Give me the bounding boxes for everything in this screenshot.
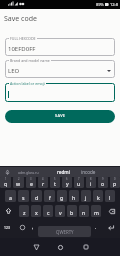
button[interactable]: q bbox=[0, 176, 11, 188]
staticText: o bbox=[101, 180, 105, 187]
staticText: u bbox=[77, 180, 81, 187]
button[interactable]: Back bbox=[26, 238, 46, 256]
staticText: x bbox=[35, 209, 38, 216]
button[interactable]: g bbox=[57, 190, 67, 202]
staticText: a bbox=[9, 194, 12, 201]
staticText: Brand and model name bbox=[10, 58, 50, 63]
staticText: 7 bbox=[78, 177, 80, 181]
button[interactable]: d bbox=[31, 190, 42, 202]
button[interactable]: w bbox=[13, 176, 24, 188]
staticText: adm.glass.ru bbox=[18, 170, 39, 175]
button[interactable] bbox=[5, 60, 115, 78]
button[interactable]: r bbox=[38, 176, 48, 188]
staticText: Action label or emoji bbox=[10, 81, 45, 86]
staticText: 4 bbox=[42, 177, 44, 181]
staticText: p bbox=[113, 180, 117, 187]
staticText: 9 bbox=[102, 177, 104, 181]
staticText: SAVE bbox=[55, 113, 66, 118]
button[interactable]: adm.glass.ru bbox=[12, 167, 44, 177]
staticText: 8 bbox=[90, 177, 92, 181]
staticText: 5 bbox=[54, 177, 56, 181]
staticText: v bbox=[59, 209, 62, 216]
button[interactable]: redmi bbox=[47, 167, 79, 177]
button[interactable]: t bbox=[50, 176, 60, 188]
button[interactable]: x bbox=[31, 205, 41, 217]
staticText: r bbox=[42, 180, 45, 187]
staticText: s bbox=[22, 194, 25, 201]
staticText: 2 bbox=[18, 177, 20, 181]
button[interactable]: incode bbox=[72, 167, 104, 177]
staticText: 0 bbox=[114, 177, 116, 181]
staticText: y bbox=[66, 180, 69, 187]
staticText: incode bbox=[81, 169, 96, 175]
staticText: h bbox=[72, 194, 76, 201]
button[interactable]: SAVE bbox=[5, 110, 115, 123]
button[interactable]: b bbox=[67, 205, 77, 217]
button[interactable]: m bbox=[91, 205, 101, 217]
button[interactable]: s bbox=[18, 190, 29, 202]
staticText: . bbox=[95, 224, 97, 231]
button[interactable]: y bbox=[62, 176, 72, 188]
staticText: z bbox=[23, 209, 26, 216]
button[interactable] bbox=[5, 83, 115, 102]
button[interactable]: Recents bbox=[76, 238, 96, 256]
staticText: i bbox=[90, 180, 92, 187]
button[interactable]: v bbox=[55, 205, 65, 217]
button[interactable]: u bbox=[74, 176, 84, 188]
staticText: 6 bbox=[66, 177, 68, 181]
staticText: Save code bbox=[4, 14, 37, 24]
staticText: l bbox=[109, 194, 111, 201]
staticText: g bbox=[60, 194, 64, 201]
staticText: 3 bbox=[30, 177, 32, 181]
button[interactable]: k bbox=[93, 190, 103, 202]
button[interactable]: QWERTY bbox=[38, 226, 91, 237]
button[interactable]: Emoji bbox=[15, 220, 29, 237]
button[interactable]: l bbox=[105, 190, 115, 202]
button[interactable]: p bbox=[110, 176, 120, 188]
button[interactable] bbox=[5, 38, 115, 56]
button[interactable]: o bbox=[98, 176, 108, 188]
button[interactable]: . bbox=[92, 220, 100, 237]
button[interactable]: i bbox=[86, 176, 96, 188]
button[interactable]: , bbox=[29, 220, 36, 237]
staticText: w bbox=[16, 180, 21, 187]
button[interactable]: Backspace bbox=[103, 205, 120, 217]
staticText: j bbox=[85, 194, 87, 201]
button[interactable]: z bbox=[19, 205, 29, 217]
staticText: e bbox=[30, 180, 33, 187]
staticText: c bbox=[47, 209, 50, 216]
staticText: n bbox=[82, 209, 86, 216]
staticText: , bbox=[32, 224, 34, 231]
button[interactable]: n bbox=[79, 205, 89, 217]
staticText: b bbox=[70, 209, 74, 216]
staticText: 12:8 bbox=[110, 2, 118, 7]
staticText: 1 bbox=[5, 177, 7, 181]
staticText: redmi bbox=[57, 169, 70, 175]
button[interactable]: Enter bbox=[102, 220, 120, 237]
button[interactable]: Home bbox=[50, 238, 70, 256]
staticText: d bbox=[35, 194, 39, 201]
staticText: FULL HEXCODE bbox=[10, 36, 36, 41]
staticText: 89% bbox=[96, 2, 104, 7]
staticText: 123 bbox=[4, 225, 10, 230]
staticText: k bbox=[97, 194, 100, 201]
button[interactable]: Voice input bbox=[2, 167, 12, 177]
button[interactable]: 123 bbox=[0, 220, 14, 237]
staticText: t bbox=[54, 180, 56, 187]
button[interactable]: h bbox=[69, 190, 79, 202]
button[interactable]: f bbox=[44, 190, 55, 202]
button[interactable]: e bbox=[26, 176, 36, 188]
staticText: f bbox=[49, 194, 51, 201]
staticText: QWERTY bbox=[56, 229, 74, 235]
button[interactable]: Shift bbox=[0, 205, 17, 217]
staticText: q bbox=[4, 180, 8, 187]
staticText: m bbox=[94, 209, 99, 216]
staticText: 10EFD0FF bbox=[8, 45, 36, 53]
button[interactable]: a bbox=[5, 190, 16, 202]
button[interactable]: j bbox=[81, 190, 91, 202]
staticText: LEO bbox=[8, 67, 20, 75]
button[interactable]: c bbox=[43, 205, 53, 217]
